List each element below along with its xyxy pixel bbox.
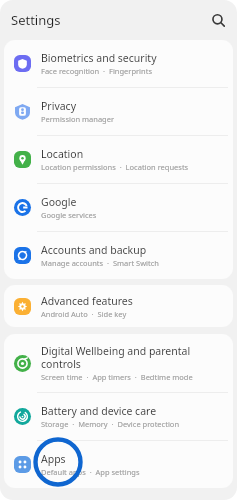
staticText: Advanced features: [41, 294, 133, 308]
staticText: Google services: [41, 210, 97, 220]
staticText: Face recognition · Fingerprints: [41, 66, 152, 76]
staticText: Storage · Memory · Device protection: [41, 419, 180, 429]
staticText: Biometrics and security: [41, 51, 157, 65]
button[interactable]: Battery and device care: [4, 393, 233, 440]
button[interactable]: Apps: [4, 441, 233, 488]
staticText: Settings: [11, 11, 61, 29]
staticText: Privacy: [41, 99, 77, 113]
staticText: Digital Wellbeing and parental controls: [41, 344, 225, 371]
button[interactable]: Privacy: [4, 88, 233, 135]
button[interactable]: Google: [4, 184, 233, 231]
staticText: Apps: [41, 452, 66, 466]
staticText: Screen time · App timers · Bedtime mode: [41, 372, 193, 382]
staticText: Android Auto · Side key: [41, 309, 127, 319]
staticText: Location: [41, 147, 84, 161]
staticText: Default apps · App settings: [41, 467, 140, 477]
button[interactable]: Digital Wellbeing and parental controls: [4, 334, 233, 392]
staticText: Location permissions · Location requests: [41, 162, 189, 172]
button[interactable]: Advanced features: [4, 285, 233, 327]
staticText: Battery and device care: [41, 404, 157, 418]
button[interactable]: Location: [4, 136, 233, 183]
button[interactable]: Biometrics and security: [4, 40, 233, 87]
button[interactable]: Accounts and backup: [4, 232, 233, 279]
staticText: Accounts and backup: [41, 243, 147, 257]
staticText: Manage accounts · Smart Switch: [41, 258, 159, 268]
button[interactable]: Search: [206, 8, 230, 32]
staticText: Google: [41, 195, 77, 209]
staticText: Permission manager: [41, 114, 115, 124]
